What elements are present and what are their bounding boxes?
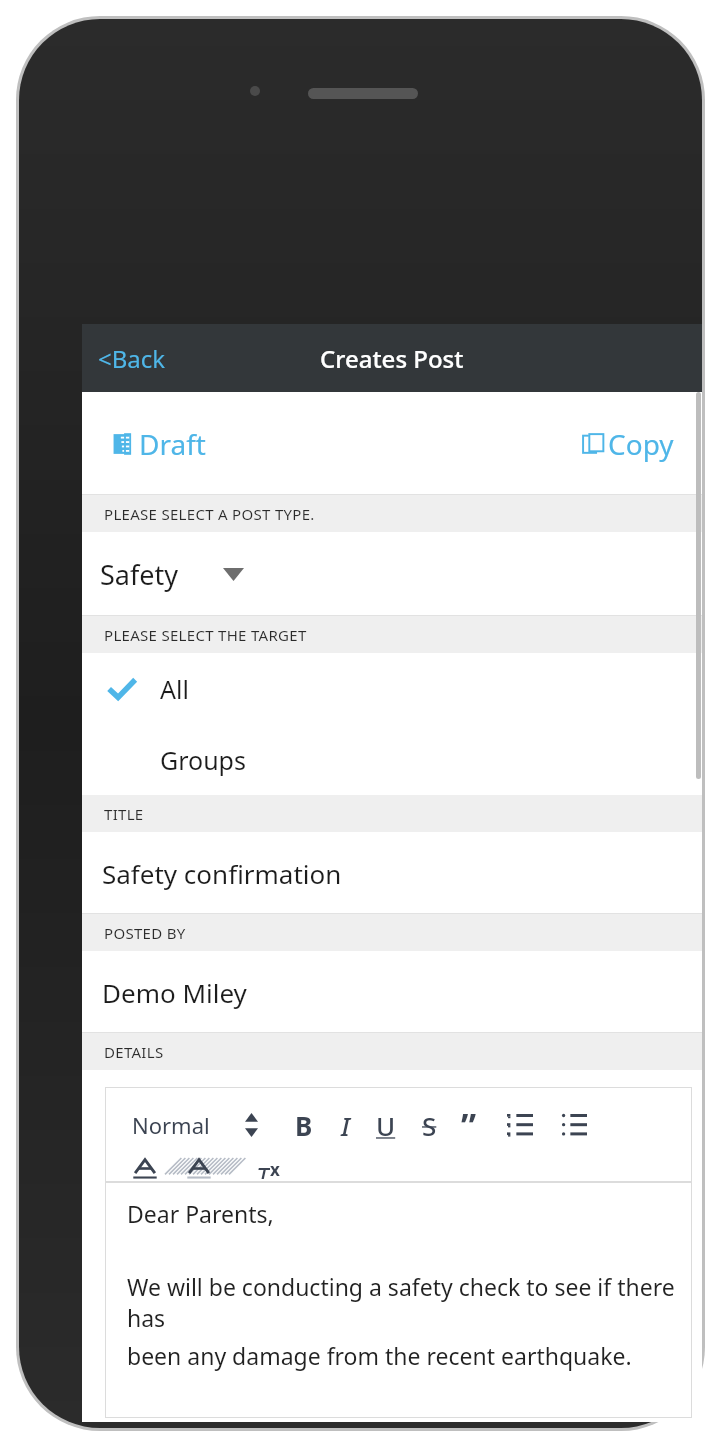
- button[interactable]: Groups: [82, 724, 702, 795]
- button[interactable]: Bold: [292, 1105, 316, 1146]
- staticText: All: [160, 672, 189, 706]
- staticText: PLEASE SELECT A POST TYPE.: [104, 504, 315, 524]
- button[interactable]: Blockquote: [458, 1099, 480, 1151]
- button[interactable]: Normal: [129, 1107, 213, 1143]
- button[interactable]: Clear formatting: [253, 1155, 283, 1182]
- staticText: Dear Parents,: [127, 1198, 274, 1229]
- button[interactable]: Demo Miley: [82, 951, 702, 1033]
- staticText: Copy: [608, 425, 674, 463]
- staticText: S: [422, 1108, 437, 1143]
- button[interactable]: Safety confirmation: [82, 832, 702, 914]
- staticText: TITLE: [104, 804, 144, 824]
- staticText: Please respond below.: [127, 1411, 368, 1418]
- staticText: x: [270, 1158, 280, 1179]
- staticText: Draft: [139, 425, 206, 463]
- button[interactable]: Numbered list: [504, 1111, 536, 1140]
- button[interactable]: Italic: [338, 1105, 353, 1146]
- button[interactable]: Text color: [129, 1155, 161, 1182]
- staticText: <Back: [98, 342, 166, 375]
- button[interactable]: All: [82, 653, 702, 724]
- staticText: POSTED BY: [104, 923, 186, 943]
- button[interactable]: Strikethrough: [419, 1105, 440, 1146]
- staticText: Safety confirmation: [102, 856, 342, 891]
- staticText: PLEASE SELECT THE TARGET: [104, 625, 307, 645]
- staticText: I: [341, 1108, 350, 1143]
- staticText: Normal: [132, 1110, 210, 1140]
- button[interactable]: Background color: [183, 1155, 215, 1182]
- staticText: U: [376, 1108, 396, 1143]
- staticText: Creates Post: [320, 342, 464, 375]
- button[interactable]: Change size: [241, 1109, 262, 1141]
- staticText: Demo Miley: [102, 975, 247, 1010]
- button[interactable]: Bulleted list: [558, 1111, 590, 1140]
- button[interactable]: Dear Parents,: [105, 1182, 692, 1418]
- staticText: been any damage from the recent earthqua…: [127, 1340, 632, 1371]
- staticText: B: [295, 1108, 313, 1143]
- staticText: DETAILS: [104, 1042, 164, 1062]
- button[interactable]: Safety: [82, 532, 702, 616]
- staticText: Safety: [100, 556, 179, 593]
- button[interactable]: Underline: [373, 1105, 399, 1146]
- button[interactable]: Copy: [573, 415, 682, 473]
- button[interactable]: <Back: [82, 336, 176, 381]
- staticText: Groups: [160, 743, 246, 777]
- staticText: ”: [461, 1102, 477, 1148]
- staticText: T: [256, 1158, 270, 1179]
- staticText: We will be conducting a safety check to …: [127, 1271, 692, 1333]
- button[interactable]: Draft: [104, 415, 214, 473]
